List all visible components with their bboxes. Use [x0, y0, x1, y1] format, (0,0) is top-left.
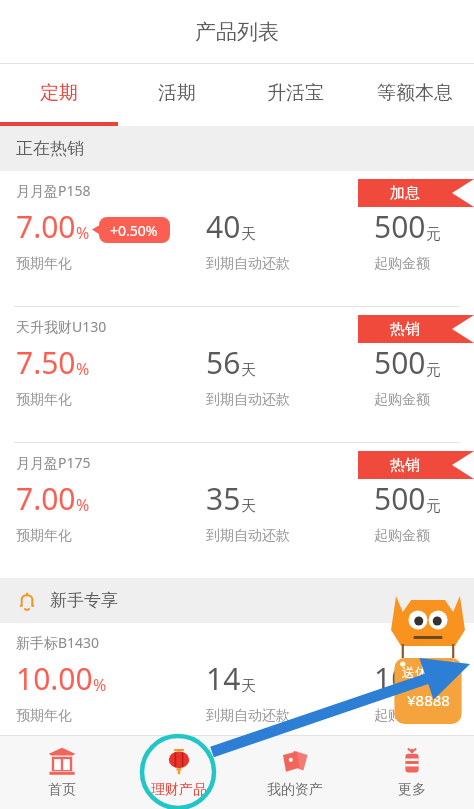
staticText: 元 [426, 497, 441, 516]
staticText: 送体验金 [402, 664, 454, 680]
staticText: % [93, 674, 107, 696]
staticText: 起购金额 [374, 255, 430, 273]
staticText: 到期自动还款 [206, 391, 290, 409]
staticText: 元 [426, 225, 441, 244]
staticText: 热销 [390, 456, 420, 475]
staticText: 升活宝 [267, 81, 324, 105]
staticText: 天 [241, 677, 256, 696]
staticText: 10.00 [16, 658, 93, 699]
staticText: 到期自动还款 [206, 527, 290, 545]
staticText: 40 [206, 206, 241, 247]
staticText: 新手标B1430 [16, 633, 100, 652]
staticText: 元 [409, 677, 424, 696]
staticText: 元 [426, 361, 441, 380]
staticText: 预期年化 [16, 255, 72, 273]
staticText: 预期年化 [16, 707, 72, 725]
button[interactable]: 活期 [118, 64, 236, 122]
staticText: 500 [374, 206, 426, 247]
staticText: 起购金额 [374, 527, 430, 545]
staticText: 预期年化 [16, 527, 72, 545]
staticText: 热销 [390, 320, 420, 339]
button[interactable]: 月月盈P175 [0, 443, 474, 578]
button[interactable]: 月月盈P158 [0, 171, 474, 306]
staticText: 起购金额 [374, 391, 430, 409]
staticText: 等额本息 [377, 81, 453, 105]
button[interactable]: 我的资产 [240, 736, 350, 809]
staticText: 月月盈P158 [16, 181, 91, 200]
staticText: 更多 [398, 781, 426, 799]
staticText: 56 [206, 342, 241, 383]
staticText: 首页 [48, 781, 76, 799]
staticText: 月月盈P175 [16, 453, 91, 472]
staticText: +0.50% [110, 221, 158, 240]
button[interactable]: 升活宝 [236, 64, 355, 122]
staticText: 我的资产 [267, 781, 323, 799]
button[interactable]: 等额本息 [355, 64, 474, 122]
button[interactable]: 理财产品 [124, 736, 234, 809]
staticText: 理财产品 [151, 781, 207, 799]
staticText: 活期 [158, 81, 196, 105]
staticText: 天 [241, 497, 256, 516]
staticText: 10 [374, 658, 409, 699]
staticText: 加息 [390, 184, 420, 203]
staticText: 7.00 [16, 478, 76, 519]
staticText: 到期自动还款 [206, 255, 290, 273]
staticText: 天升我财U130 [16, 317, 107, 336]
staticText: 500 [374, 342, 426, 383]
staticText: 定期 [40, 81, 78, 105]
button[interactable]: 定期 [0, 64, 118, 122]
button[interactable]: 新手标B1430 [0, 623, 474, 733]
staticText: ¥8888 [407, 690, 450, 710]
staticText: 天 [241, 361, 256, 380]
staticText: 起购金额 [374, 707, 430, 725]
staticText: 正在热销 [16, 138, 84, 159]
staticText: 天 [241, 225, 256, 244]
staticText: % [76, 494, 90, 516]
staticText: 7.00 [16, 206, 76, 247]
button[interactable]: 天升我财U130 [0, 307, 474, 442]
staticText: 新手专享 [50, 590, 118, 611]
button[interactable]: 更多 [357, 736, 467, 809]
staticText: % [76, 222, 90, 244]
staticText: 预期年化 [16, 391, 72, 409]
staticText: 产品列表 [195, 19, 279, 45]
staticText: % [76, 358, 90, 380]
staticText: 7.50 [16, 342, 76, 383]
button[interactable]: 首页 [7, 736, 117, 809]
staticText: 到期自动还款 [206, 707, 290, 725]
staticText: 500 [374, 478, 426, 519]
staticText: 14 [206, 658, 241, 699]
staticText: 35 [206, 478, 241, 519]
